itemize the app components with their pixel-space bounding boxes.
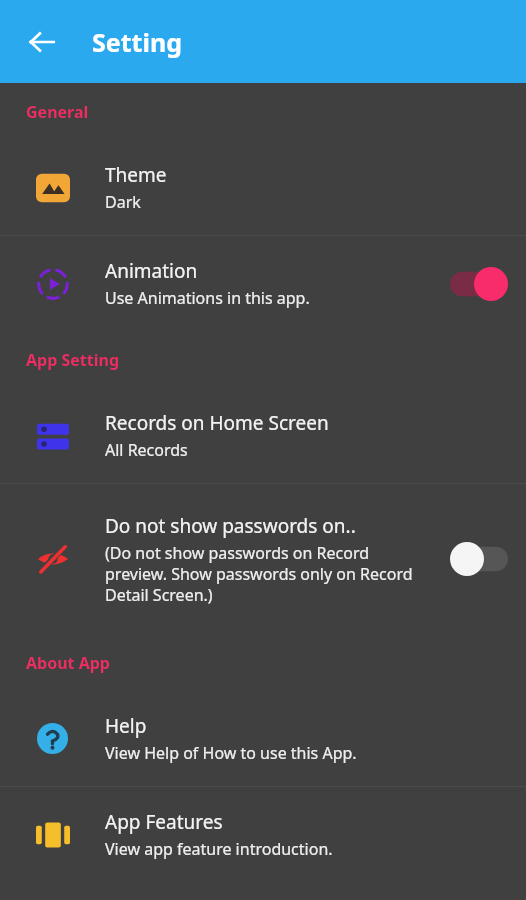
staticText: About App: [26, 652, 110, 674]
button[interactable]: Help: [0, 691, 526, 786]
staticText: Records on Home Screen: [105, 410, 329, 436]
staticText: Do not show passwords on..: [105, 513, 356, 539]
staticText: Help: [105, 713, 147, 739]
button[interactable]: Do not show passwords on..: [0, 484, 526, 634]
staticText: Setting: [92, 25, 182, 59]
staticText: View app feature introduction.: [105, 838, 333, 860]
staticText: View Help of How to use this App.: [105, 742, 357, 764]
staticText: App Setting: [26, 349, 120, 371]
staticText: Use Animations in this app.: [105, 287, 310, 309]
staticText: App Features: [105, 809, 223, 835]
button[interactable]: Back: [14, 14, 70, 70]
button[interactable]: Animation: [0, 236, 526, 331]
staticText: General: [26, 101, 89, 123]
button[interactable]: Theme: [0, 140, 526, 235]
staticText: All Records: [105, 439, 188, 461]
staticText: Animation: [105, 258, 198, 284]
button[interactable]: Records on Home Screen: [0, 388, 526, 483]
button[interactable]: App Features: [0, 787, 526, 882]
button[interactable]: Toggle on: [448, 262, 510, 306]
staticText: Theme: [105, 162, 167, 188]
button[interactable]: Toggle off: [448, 537, 510, 581]
staticText: Dark: [105, 191, 141, 213]
staticText: (Do not show passwords on Record preview…: [105, 542, 423, 606]
